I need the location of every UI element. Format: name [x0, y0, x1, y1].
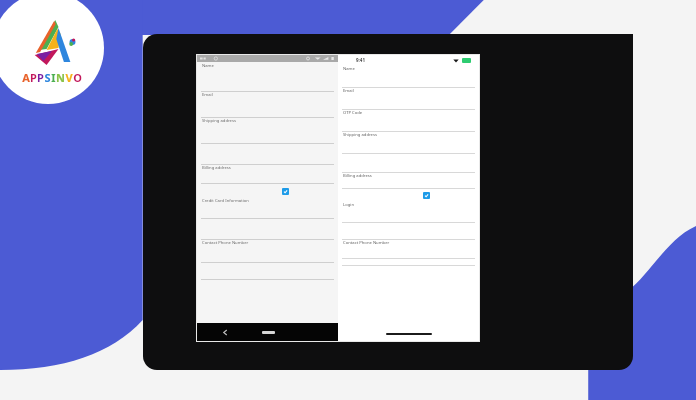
- button[interactable]: Shipping address: [197, 118, 338, 144]
- staticText: Billing address: [202, 165, 231, 171]
- staticText: V: [65, 70, 73, 85]
- button[interactable]: Appsinvo logo: [0, 0, 104, 104]
- staticText: A: [22, 70, 30, 85]
- staticText: Contact Phone Number: [343, 240, 390, 246]
- staticText: Billing address: [343, 173, 372, 179]
- button[interactable]: Credit Card Information: [197, 198, 338, 219]
- button[interactable]: Name: [338, 66, 479, 88]
- button[interactable]: Login: [338, 202, 479, 223]
- button[interactable]: Email: [197, 92, 338, 118]
- staticText: O: [73, 70, 82, 85]
- staticText: 9:41: [356, 57, 365, 63]
- button[interactable]: Home: [253, 325, 283, 339]
- staticText: I: [51, 70, 56, 85]
- staticText: Shipping address: [202, 118, 236, 124]
- button[interactable]: Email: [338, 88, 479, 110]
- button[interactable]: Checkbox: [423, 192, 430, 199]
- staticText: S: [44, 70, 51, 85]
- staticText: P: [30, 70, 37, 85]
- staticText: Name: [202, 63, 214, 69]
- button[interactable]: Back: [215, 325, 235, 339]
- button[interactable]: Billing address: [338, 173, 479, 189]
- button[interactable]: Contact Phone Number: [197, 240, 338, 263]
- button[interactable]: Billing address: [197, 165, 338, 184]
- button[interactable]: Checkbox: [282, 188, 289, 195]
- staticText: OTP Code: [343, 110, 363, 116]
- staticText: Shipping address: [343, 132, 377, 138]
- staticText: Name: [343, 66, 355, 72]
- staticText: Email: [202, 92, 213, 98]
- staticText: N: [56, 70, 65, 85]
- staticText: P: [37, 70, 44, 85]
- staticText: Login: [343, 202, 354, 208]
- staticText: Contact Phone Number: [202, 240, 249, 246]
- button[interactable]: OTP Code: [338, 110, 479, 132]
- button[interactable]: Shipping address: [338, 132, 479, 154]
- button[interactable]: Name: [197, 63, 338, 92]
- staticText: Email: [343, 88, 354, 94]
- staticText: Credit Card Information: [202, 198, 249, 204]
- button[interactable]: Contact Phone Number: [338, 240, 479, 259]
